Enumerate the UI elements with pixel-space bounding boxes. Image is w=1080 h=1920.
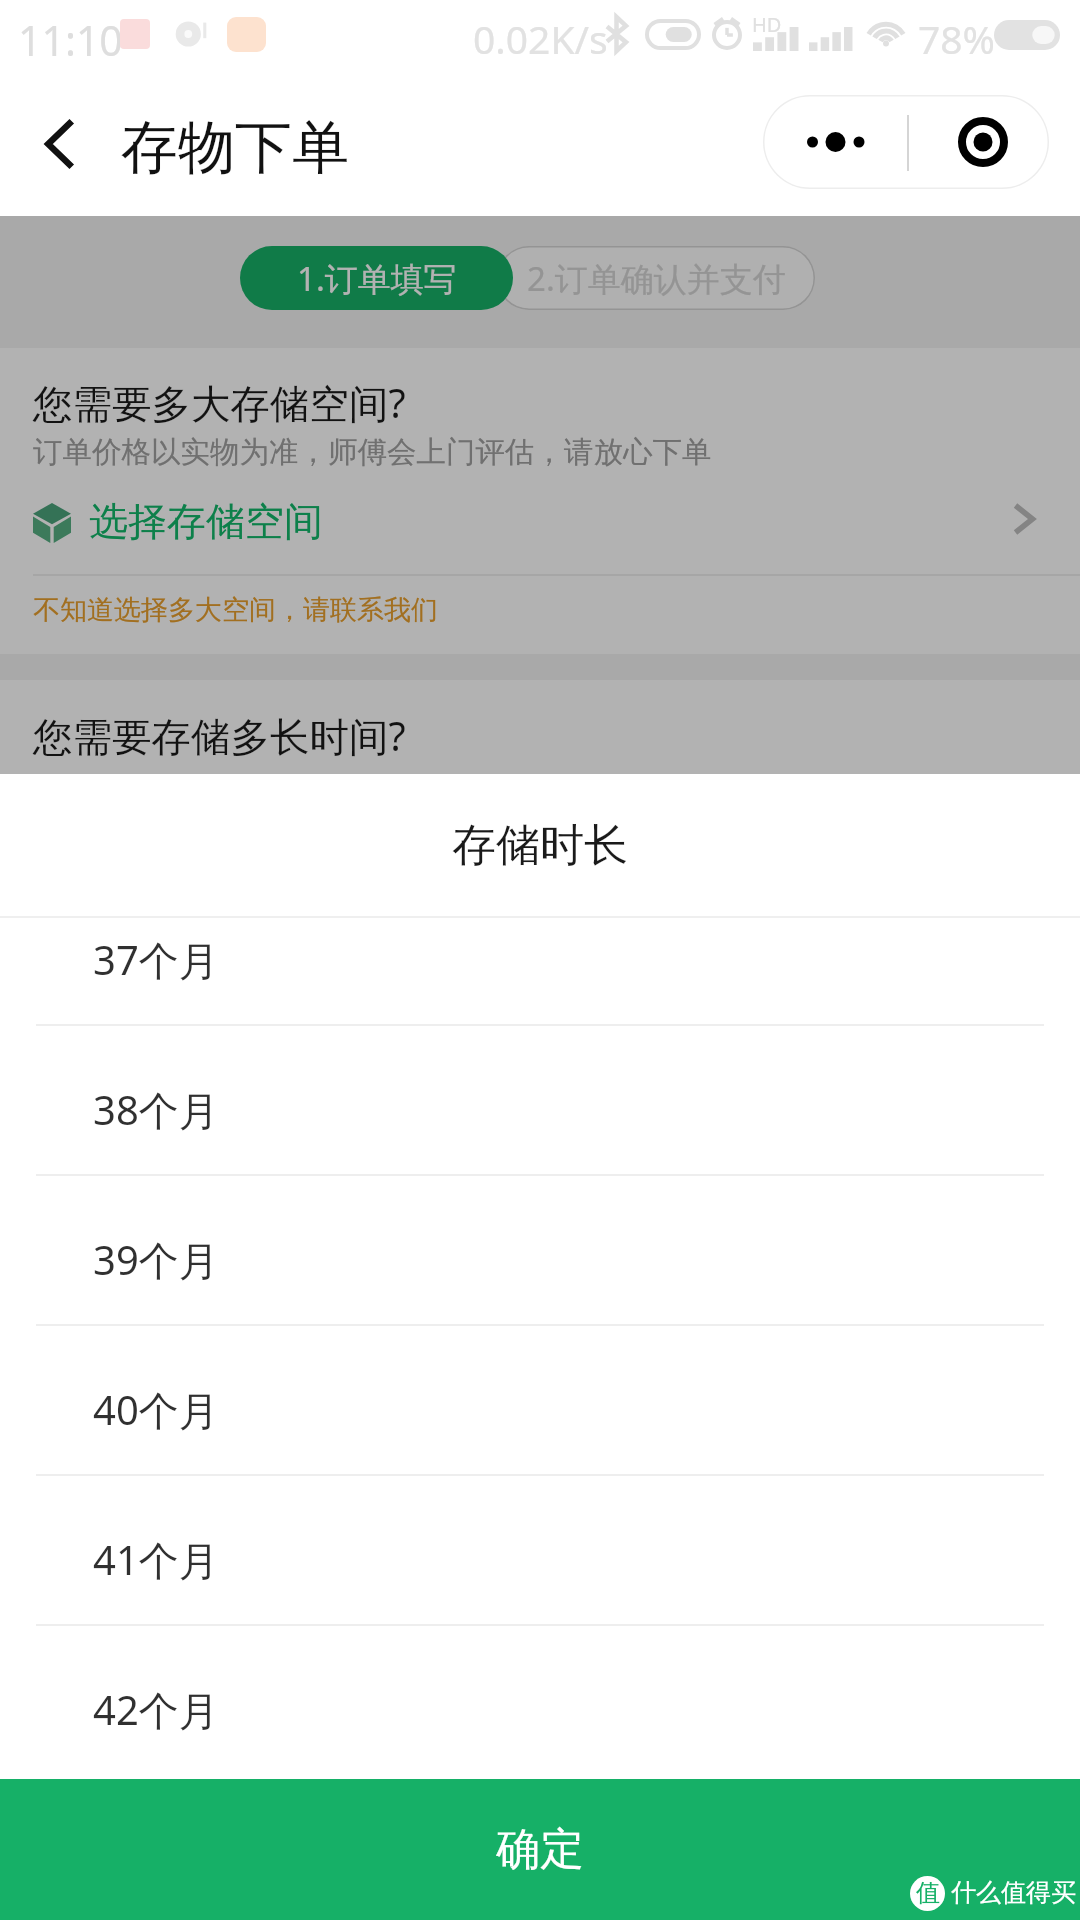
button[interactable]: 42个月	[0, 1626, 1080, 1776]
staticText: 您需要多大存储空间?	[33, 376, 406, 430]
staticText: 42个月	[93, 1682, 219, 1737]
button[interactable]: 39个月	[0, 1176, 1080, 1326]
staticText: 38个月	[93, 1082, 219, 1137]
button[interactable]: 1.订单填写	[240, 246, 513, 310]
staticText: 41个月	[93, 1532, 219, 1587]
staticText: 2.订单确认并支付	[527, 256, 786, 301]
staticText: 您需要存储多长时间?	[33, 709, 406, 763]
staticText: 37个月	[93, 932, 219, 987]
button[interactable]: 选择存储空间	[0, 488, 1080, 574]
staticText: HD	[752, 11, 782, 38]
staticText: 订单价格以实物为准，师傅会上门评估，请放心下单	[33, 434, 712, 471]
staticText: 78%	[918, 12, 996, 65]
staticText: 存物下单	[121, 112, 349, 184]
button[interactable]: 38个月	[0, 1026, 1080, 1176]
staticText: 确定	[496, 1822, 584, 1877]
button[interactable]: 41个月	[0, 1476, 1080, 1626]
button[interactable]: 40个月	[0, 1326, 1080, 1476]
staticText: 值	[916, 1878, 940, 1908]
button[interactable]: 不知道选择多大空间，请联系我们	[0, 578, 1080, 636]
staticText: 0.02K/s	[473, 12, 608, 65]
staticText: 什么值得买	[951, 1877, 1076, 1908]
staticText: 存储时长	[452, 818, 628, 873]
button[interactable]: Close mini program	[909, 95, 1049, 189]
staticText: 选择存储空间	[89, 497, 323, 546]
button[interactable]: More options	[763, 95, 908, 189]
staticText: 不知道选择多大空间，请联系我们	[33, 593, 438, 627]
staticText: 1.订单填写	[297, 256, 457, 301]
button[interactable]: 2.订单确认并支付	[497, 246, 815, 310]
staticText: 40个月	[93, 1382, 219, 1437]
staticText: 11:10	[18, 12, 123, 68]
button[interactable]: Back	[14, 90, 104, 194]
button[interactable]: Dismiss picker	[0, 216, 1080, 1920]
button[interactable]: 37个月	[0, 918, 1080, 1026]
button[interactable]: 确定	[0, 1779, 1080, 1920]
staticText: 39个月	[93, 1232, 219, 1287]
